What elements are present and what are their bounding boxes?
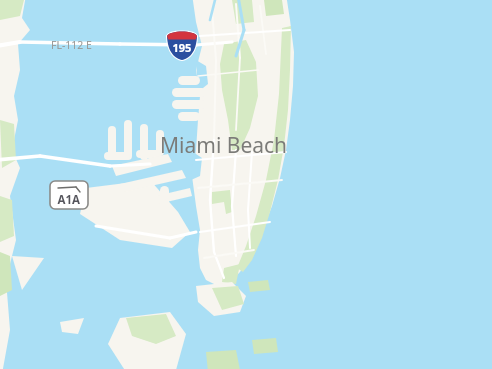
button[interactable]: Map of Miami Beach <box>0 0 492 369</box>
